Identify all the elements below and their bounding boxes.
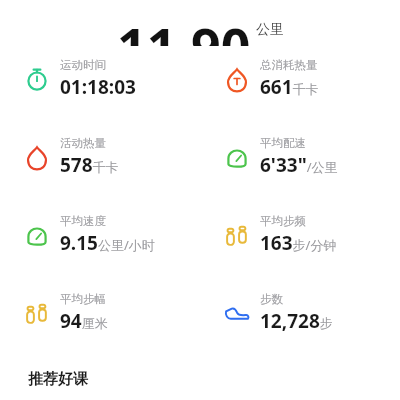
button[interactable]: 活动热量 <box>0 136 200 178</box>
button[interactable]: 平均步频 <box>200 214 400 256</box>
staticText: 578千卡 <box>60 152 119 178</box>
other: 平均步幅 <box>24 300 50 326</box>
other: 平均步频 <box>224 222 250 248</box>
staticText: 步数 <box>260 292 283 306</box>
other: 活动热量 <box>24 144 50 170</box>
button[interactable]: 总消耗热量 <box>200 58 400 100</box>
staticText: 公里 <box>256 21 284 39</box>
staticText: 661千卡 <box>260 74 319 100</box>
staticText: 6'33"/公里 <box>260 152 338 178</box>
staticText: 163步/分钟 <box>260 230 337 256</box>
staticText: 平均配速 <box>260 136 306 150</box>
staticText: 平均步频 <box>260 214 306 228</box>
staticText: 活动热量 <box>60 136 106 150</box>
staticText: 11.90 <box>117 10 251 46</box>
button[interactable]: 运动时间 <box>0 58 200 100</box>
staticText: 01:18:03 <box>60 74 136 100</box>
staticText: 平均步幅 <box>60 292 106 306</box>
staticText: 推荐好课 <box>28 370 88 389</box>
other: 运动时间 <box>24 66 50 92</box>
staticText: 12,728步 <box>260 308 333 334</box>
staticText: 运动时间 <box>60 58 106 72</box>
other: 平均速度 <box>24 222 50 248</box>
button[interactable]: 平均步幅 <box>0 292 200 334</box>
button[interactable]: 平均配速 <box>200 136 400 178</box>
staticText: 94厘米 <box>60 308 108 334</box>
button[interactable]: 平均速度 <box>0 214 200 256</box>
staticText: 9.15公里/小时 <box>60 230 155 256</box>
button[interactable]: 推荐好课 <box>0 366 400 389</box>
other: 步数 <box>224 300 250 326</box>
other: 平均配速 <box>224 144 250 170</box>
staticText: 总消耗热量 <box>260 58 318 72</box>
staticText: 平均速度 <box>60 214 106 228</box>
other: 总消耗热量 <box>224 66 250 92</box>
button[interactable]: 步数 <box>200 292 400 334</box>
